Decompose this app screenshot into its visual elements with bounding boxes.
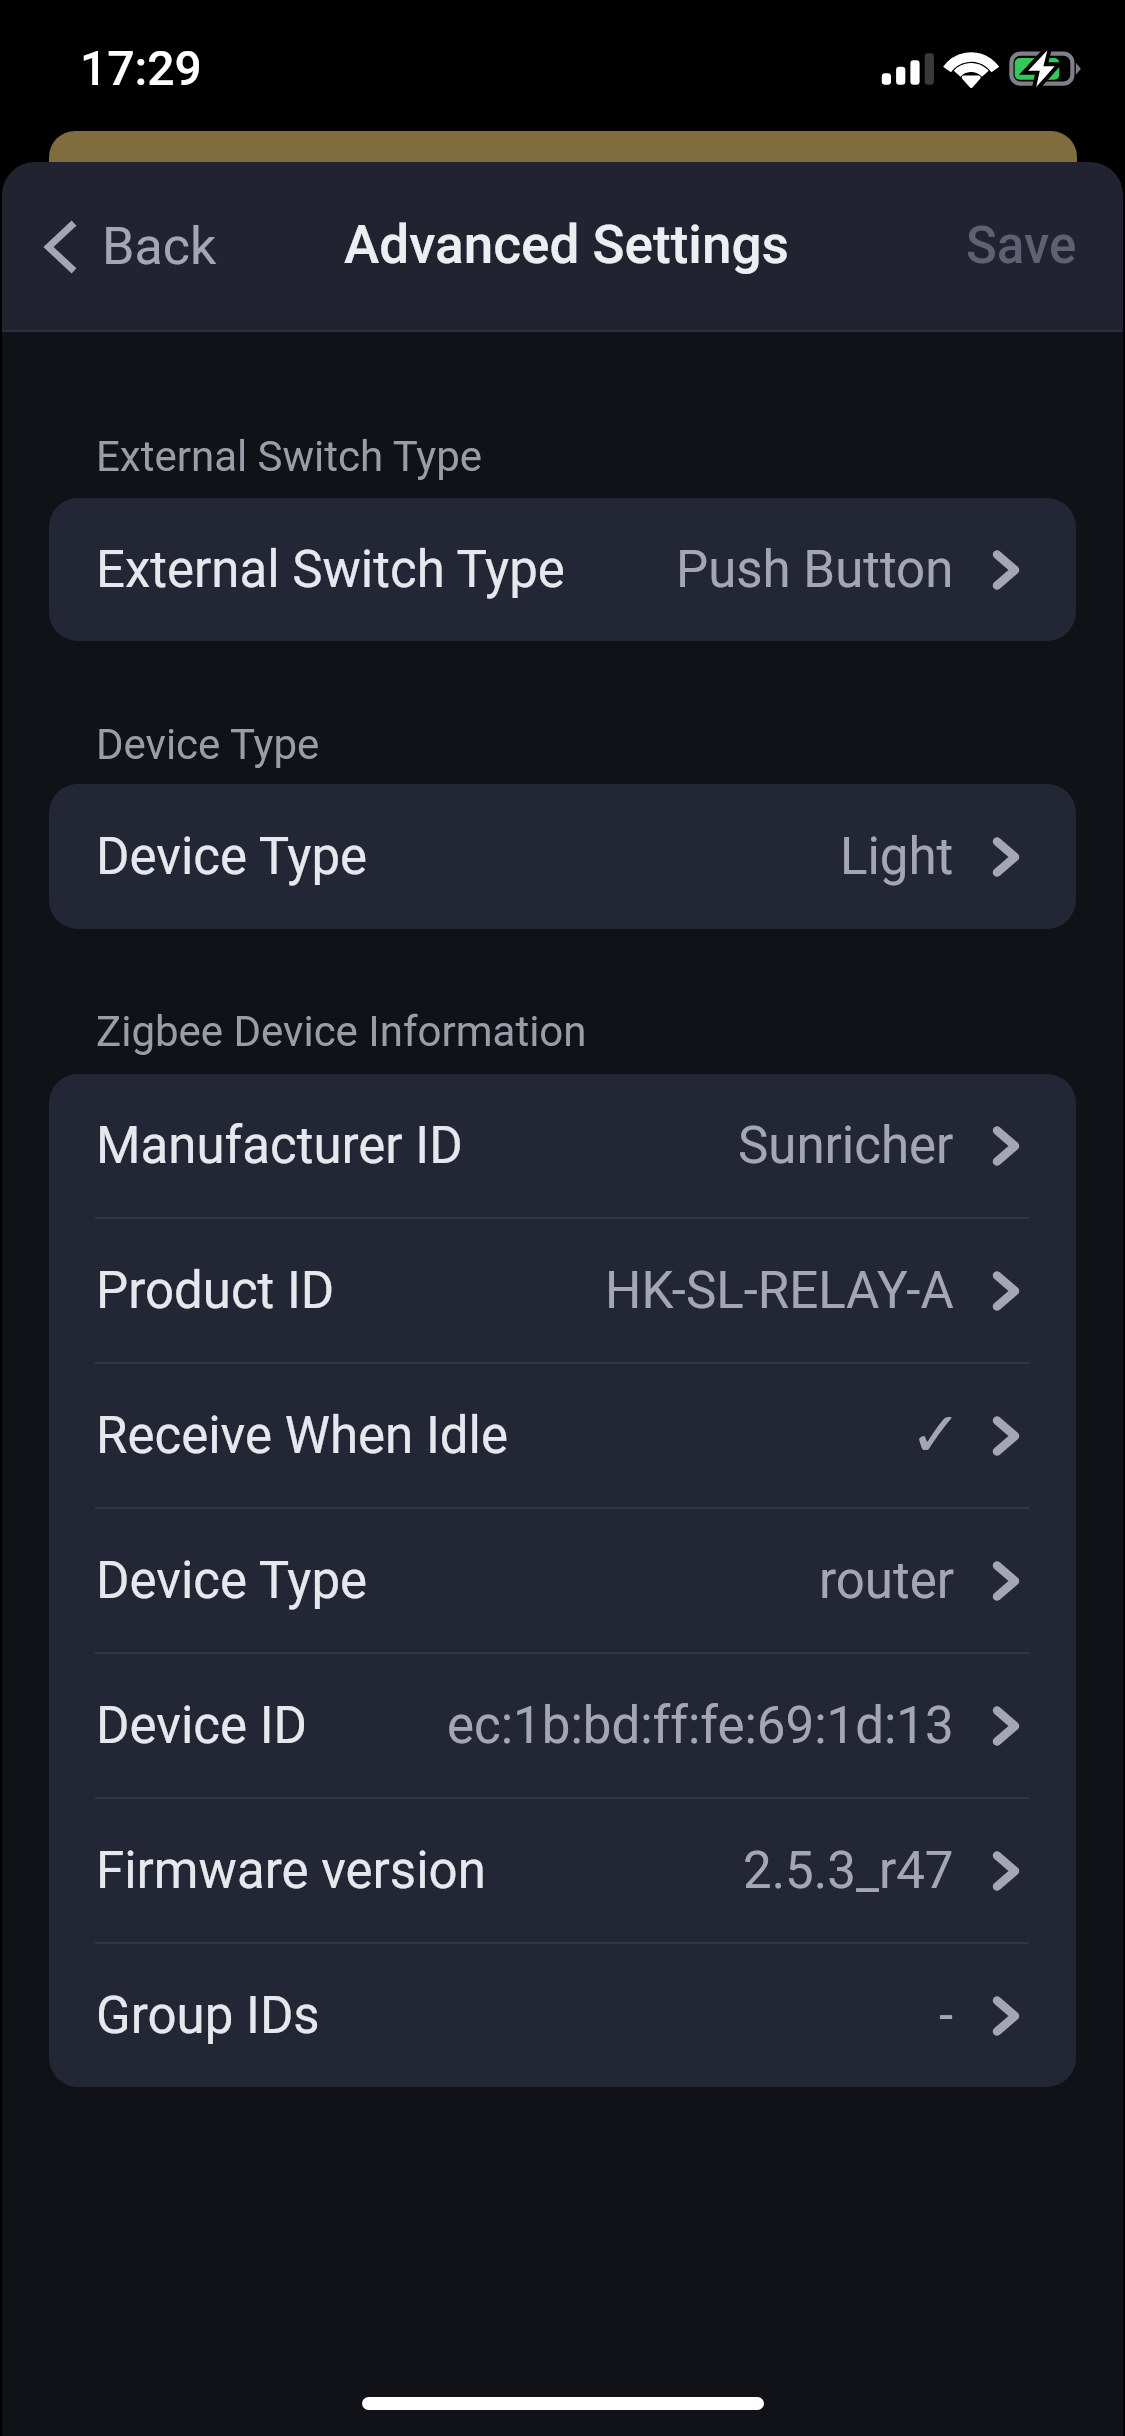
other: Back xyxy=(43,219,77,275)
staticText: HK-SL-RELAY-A xyxy=(605,1261,954,1321)
staticText: Device Type xyxy=(96,827,368,887)
button[interactable]: Receive When Idle xyxy=(49,1364,1076,1507)
staticText: 17:29 xyxy=(80,40,202,96)
button[interactable]: Back xyxy=(2,198,241,295)
staticText: Receive When Idle xyxy=(96,1406,508,1466)
staticText: Save xyxy=(966,216,1077,276)
staticText: Device ID xyxy=(96,1696,308,1756)
staticText: Push Button xyxy=(676,540,954,600)
staticText: Light xyxy=(840,827,954,887)
button[interactable]: External Switch Type xyxy=(49,498,1076,641)
button[interactable]: Device Type xyxy=(49,1509,1076,1652)
button[interactable]: Device Type xyxy=(49,784,1076,929)
button[interactable]: Group IDs xyxy=(49,1944,1076,2087)
button[interactable]: Firmware version xyxy=(49,1799,1076,1942)
staticText: ec:1b:bd:ff:fe:69:1d:13 xyxy=(447,1696,954,1756)
button[interactable]: Product ID xyxy=(49,1219,1076,1362)
button[interactable]: Manufacturer ID xyxy=(49,1074,1076,1217)
staticText: Manufacturer ID xyxy=(96,1116,463,1176)
button[interactable]: Device ID xyxy=(49,1654,1076,1797)
staticText: Firmware version xyxy=(96,1841,486,1901)
staticText: Group IDs xyxy=(96,1986,320,2046)
staticText: router xyxy=(819,1551,954,1611)
button[interactable]: Save xyxy=(926,196,1123,296)
staticText: Sunricher xyxy=(738,1116,954,1176)
staticText: Device Type xyxy=(96,720,320,769)
staticText: ✓ xyxy=(910,1398,954,1470)
staticText: Back xyxy=(102,216,217,277)
staticText: Product ID xyxy=(96,1261,335,1321)
staticText: Device Type xyxy=(96,1551,368,1611)
staticText: External Switch Type xyxy=(96,540,565,600)
staticText: 2.5.3_r47 xyxy=(743,1841,954,1901)
staticText: External Switch Type xyxy=(96,432,483,481)
staticText: Zigbee Device Information xyxy=(96,1007,587,1056)
staticText: Advanced Settings xyxy=(344,214,789,276)
staticText: - xyxy=(939,1986,954,2046)
